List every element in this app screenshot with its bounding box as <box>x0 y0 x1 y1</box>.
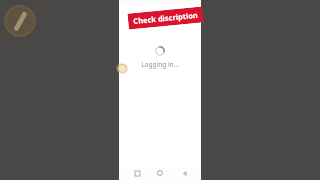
staticText: Check discription <box>133 10 198 26</box>
other: Channel watermark <box>4 5 36 37</box>
other: App badge <box>116 62 129 75</box>
button[interactable]: Check discription <box>127 6 204 29</box>
staticText: Logging in... <box>141 60 179 69</box>
button[interactable]: Home <box>154 167 166 179</box>
button[interactable]: Back <box>178 167 190 179</box>
button[interactable]: Recent apps <box>131 167 143 179</box>
